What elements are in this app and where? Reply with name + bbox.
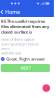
button[interactable]: Add [42, 84, 50, 92]
button[interactable]: NEXT [1, 64, 50, 72]
staticText: Home [5, 8, 20, 16]
staticText: NEXT [20, 65, 30, 71]
staticText: with the one [1, 50, 21, 56]
staticText: Great, Right answer [6, 56, 45, 62]
staticText: 0.5 The useful requires files eliminated… [1, 19, 49, 34]
staticText: none of these option [1, 37, 34, 42]
button[interactable]: Home [0, 7, 22, 17]
button[interactable]: none of these option [1, 37, 50, 41]
staticText: zero [1, 46, 9, 51]
button[interactable]: zero [1, 46, 50, 51]
button[interactable]: with the one [1, 51, 50, 55]
staticText: sum op and pi choices [1, 41, 39, 46]
button[interactable]: sum op and pi choices [1, 41, 50, 46]
